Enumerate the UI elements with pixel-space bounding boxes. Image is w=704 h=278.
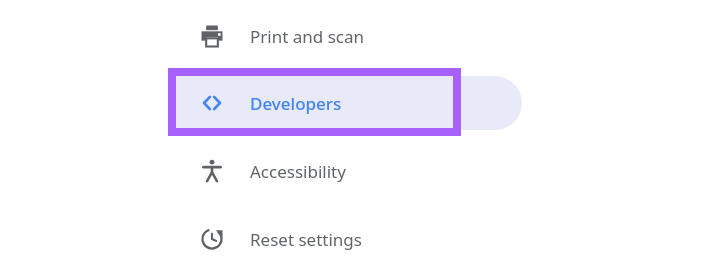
button[interactable] (176, 76, 522, 130)
button[interactable] (176, 76, 522, 130)
other: Reset settings (198, 225, 226, 253)
button[interactable] (176, 9, 522, 63)
other: Accessibility (198, 157, 226, 185)
staticText: Print and scan (250, 25, 365, 48)
staticText: Developers (250, 92, 342, 115)
button[interactable] (176, 212, 522, 266)
button[interactable] (176, 144, 522, 198)
staticText: Accessibility (250, 160, 346, 183)
other: Print and scan (198, 22, 226, 50)
staticText: Reset settings (250, 228, 362, 251)
other: Developers (198, 89, 226, 117)
